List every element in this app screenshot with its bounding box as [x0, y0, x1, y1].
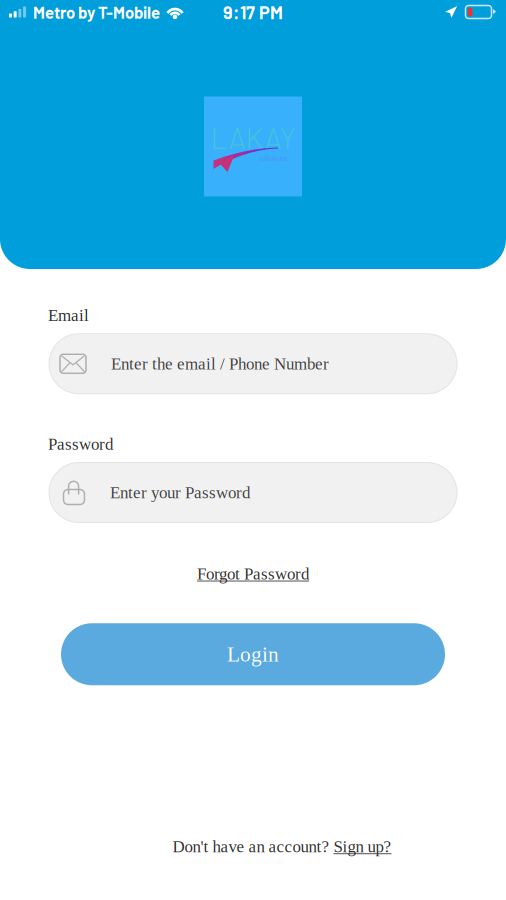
staticText: Don't have an account? [172, 837, 333, 856]
staticText: LAKAY [210, 120, 295, 155]
button[interactable]: Email or phone number [49, 334, 457, 394]
staticText: 9:17 PM [223, 1, 283, 23]
staticText: Enter your Password [110, 483, 250, 502]
staticText: Login [227, 642, 279, 666]
staticText: Email [48, 306, 89, 325]
staticText: Metro by T-Mobile [33, 2, 160, 22]
staticText: Forgot Password [197, 564, 309, 583]
button[interactable]: Password [49, 462, 457, 522]
staticText: Sign up? [333, 837, 391, 856]
button[interactable]: Forgot Password [185, 556, 321, 591]
staticText: Enter the email / Phone Number [111, 354, 329, 373]
button[interactable]: Don't have an account? [129, 829, 376, 864]
staticText: solutions [259, 154, 287, 162]
staticText: Password [48, 435, 113, 454]
button[interactable]: Login [61, 623, 445, 685]
